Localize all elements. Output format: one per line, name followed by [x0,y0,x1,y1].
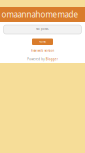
button[interactable]: Home [32,38,53,45]
staticText: View web version [30,49,54,52]
button[interactable]: Powered by [27,57,58,61]
staticText: Powered by [27,57,44,61]
staticText: Blogger [46,57,58,61]
staticText: No posts. [36,27,49,31]
staticText: Home [38,40,46,43]
staticText: omaannahomemade [1,9,78,20]
button[interactable]: View web version [28,48,56,53]
